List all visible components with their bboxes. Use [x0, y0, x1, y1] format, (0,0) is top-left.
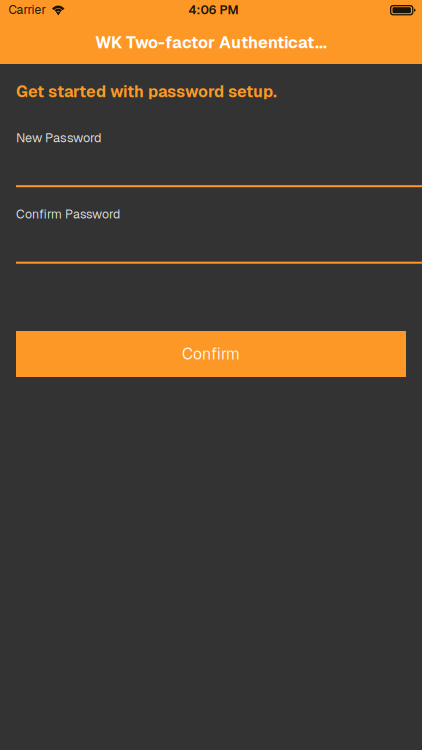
- staticText: New Password: [16, 129, 102, 146]
- button[interactable]: New Password: [16, 129, 422, 187]
- staticText: Get started with password setup.: [16, 81, 277, 102]
- staticText: 4:06 PM: [188, 2, 238, 18]
- staticText: WK Two-factor Authenticat...: [95, 32, 327, 53]
- staticText: Confirm Password: [16, 206, 120, 222]
- button[interactable]: Confirm Password: [16, 206, 422, 264]
- button[interactable]: Confirm: [16, 331, 406, 377]
- staticText: Carrier: [8, 2, 46, 17]
- staticText: Confirm: [182, 344, 240, 364]
